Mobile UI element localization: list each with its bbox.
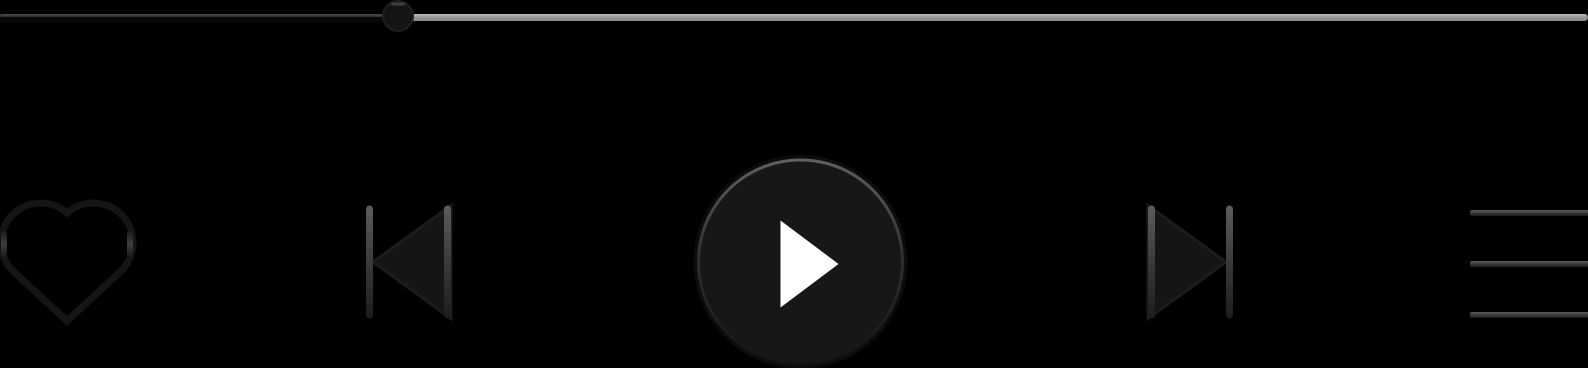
button[interactable]: Next track	[1148, 205, 1233, 318]
button[interactable]: Favourite	[1, 203, 133, 321]
button[interactable]: Play	[693, 155, 907, 368]
button[interactable]: Previous track	[366, 205, 451, 318]
button[interactable]: Playing next	[1470, 210, 1588, 318]
